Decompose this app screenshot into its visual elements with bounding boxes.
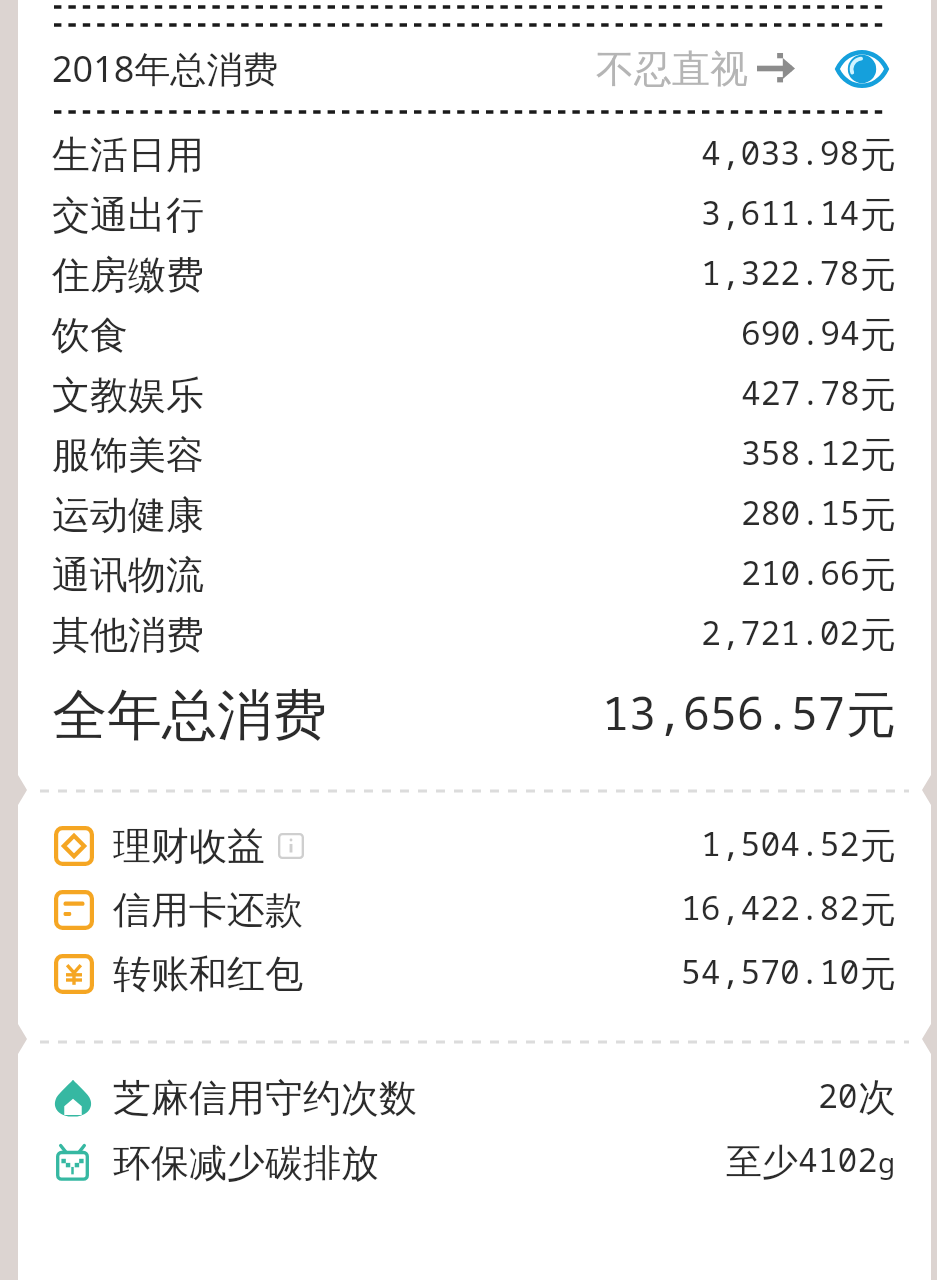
staticText: 文教娱乐 — [52, 371, 204, 419]
staticText: 1,504.52 — [701, 821, 860, 866]
button[interactable]: Carbon reduction — [18, 1130, 931, 1195]
button[interactable]: 运动健康 — [18, 485, 931, 545]
staticText: 元 — [860, 192, 896, 237]
staticText: 元 — [860, 372, 896, 417]
button[interactable]: Credit card repayment — [18, 878, 931, 942]
staticText: 2,721.02 — [701, 610, 860, 655]
staticText: 20 — [818, 1073, 858, 1118]
staticText: 690.94 — [741, 310, 860, 355]
staticText: g — [878, 1143, 896, 1181]
staticText: 次 — [858, 1073, 896, 1121]
other: Carbon reduction — [54, 1144, 91, 1181]
staticText: 元 — [846, 684, 896, 747]
other: Credit card repayment — [54, 890, 94, 930]
staticText: 生活日用 — [52, 131, 204, 179]
staticText: 元 — [860, 887, 896, 932]
staticText: 4102 — [798, 1137, 878, 1182]
button[interactable]: 服饰美容 — [18, 425, 931, 485]
button[interactable]: 生活日用 — [18, 125, 931, 185]
other: Transfers and red packets — [54, 954, 94, 994]
button[interactable]: 全年总消费 — [18, 669, 931, 761]
staticText: 2018年总消费 — [52, 44, 279, 93]
staticText: 16,422.82 — [681, 885, 860, 930]
staticText: 转账和红包 — [113, 950, 303, 998]
staticText: 住房缴费 — [52, 251, 204, 299]
staticText: 13,656.57 — [602, 682, 846, 743]
staticText: 210.66 — [741, 550, 860, 595]
button[interactable]: 交通出行 — [18, 185, 931, 245]
staticText: 通讯物流 — [52, 551, 204, 599]
button[interactable]: Sesame credit — [18, 1065, 931, 1130]
staticText: 4,033.98 — [701, 130, 860, 175]
staticText: 元 — [860, 951, 896, 996]
staticText: 元 — [860, 612, 896, 657]
staticText: 全年总消费 — [52, 681, 327, 750]
other: Sesame credit — [54, 1079, 92, 1117]
staticText: 元 — [860, 312, 896, 357]
other: Investment income — [54, 826, 94, 866]
staticText: 元 — [860, 252, 896, 297]
button[interactable]: Investment income — [18, 814, 931, 878]
button[interactable]: 文教娱乐 — [18, 365, 931, 425]
staticText: 元 — [860, 552, 896, 597]
staticText: 芝麻信用守约次数 — [113, 1074, 417, 1122]
staticText: 元 — [860, 432, 896, 477]
staticText: 427.78 — [741, 370, 860, 415]
staticText: 280.15 — [741, 490, 860, 535]
staticText: 3,611.14 — [701, 190, 860, 235]
staticText: 358.12 — [741, 430, 860, 475]
staticText: 元 — [860, 132, 896, 177]
staticText: 元 — [860, 823, 896, 868]
button[interactable]: 饮食 — [18, 305, 931, 365]
staticText: 服饰美容 — [52, 431, 204, 479]
staticText: 信用卡还款 — [113, 886, 303, 934]
staticText: 1,322.78 — [701, 250, 860, 295]
button[interactable]: Transfers and red packets — [18, 942, 931, 1006]
staticText: 环保减少碳排放 — [113, 1139, 379, 1187]
button[interactable]: 通讯物流 — [18, 545, 931, 605]
staticText: 不忍直视 — [596, 45, 748, 93]
button[interactable]: 其他消费 — [18, 605, 931, 665]
staticText: 至少 — [726, 1139, 798, 1184]
other: Show amounts — [835, 49, 889, 89]
staticText: 理财收益 — [113, 822, 265, 870]
staticText: 运动健康 — [52, 491, 204, 539]
button[interactable]: 住房缴费 — [18, 245, 931, 305]
staticText: 54,570.10 — [681, 949, 860, 994]
button[interactable]: 2018年总消费 — [18, 31, 931, 106]
staticText: 其他消费 — [52, 611, 204, 659]
staticText: 元 — [860, 492, 896, 537]
staticText: 交通出行 — [52, 191, 204, 239]
staticText: 饮食 — [52, 311, 128, 359]
